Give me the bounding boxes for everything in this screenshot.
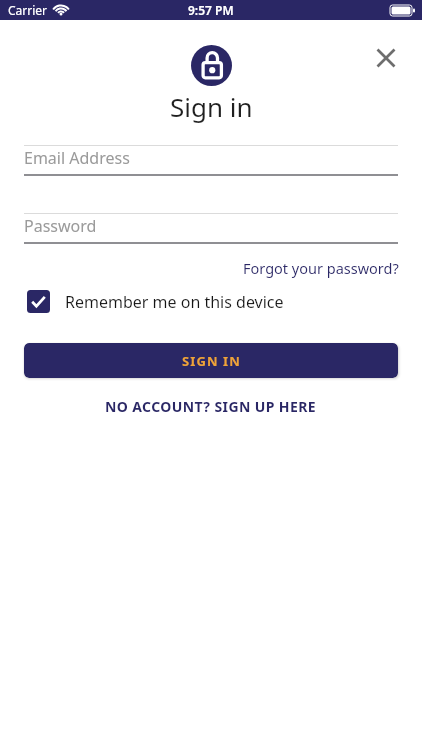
staticText: SIGN IN <box>182 352 241 370</box>
button[interactable]: NO ACCOUNT? SIGN UP HERE <box>105 397 317 416</box>
staticText: Carrier <box>8 2 48 18</box>
button[interactable] <box>371 43 400 72</box>
staticText: Sign in <box>170 89 253 124</box>
staticText: Password <box>24 215 97 237</box>
button[interactable]: Password <box>24 213 398 244</box>
button[interactable]: Remember me on this device <box>27 290 422 313</box>
button[interactable]: Email Address <box>24 145 398 176</box>
staticText: Remember me on this device <box>65 291 284 313</box>
staticText: Forgot your password? <box>243 258 399 278</box>
staticText: 9:57 PM <box>188 2 234 18</box>
button[interactable]: SIGN IN <box>24 343 398 378</box>
staticText: NO ACCOUNT? SIGN UP HERE <box>105 397 317 416</box>
button[interactable]: Forgot your password? <box>243 258 399 278</box>
staticText: Email Address <box>24 147 130 169</box>
